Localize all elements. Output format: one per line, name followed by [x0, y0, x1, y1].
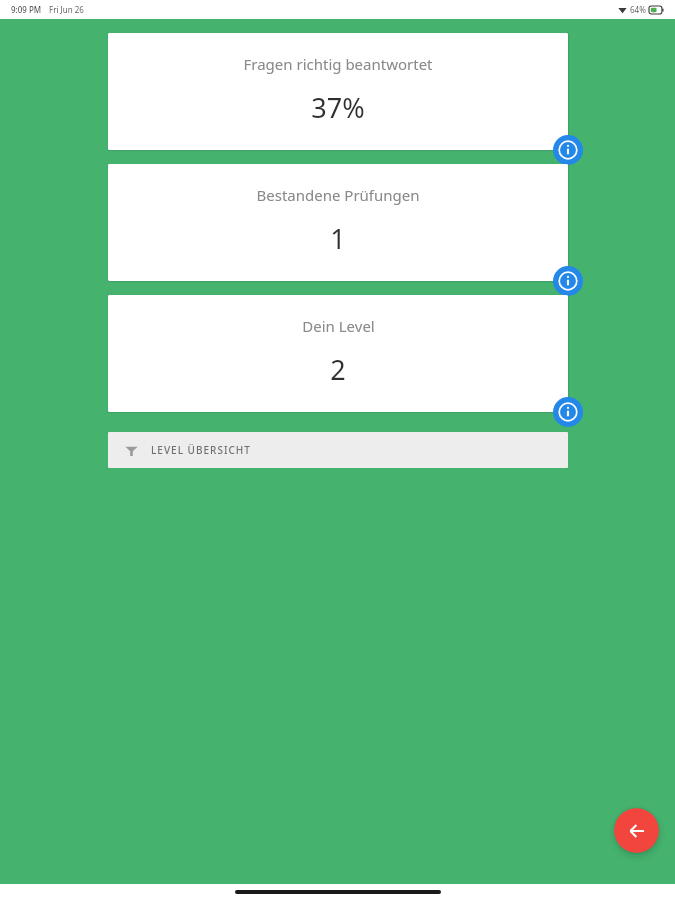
button[interactable]: Fragen richtig beantwortet	[108, 33, 568, 150]
staticText: 1	[330, 220, 346, 257]
button[interactable]: Dein Level	[108, 295, 568, 412]
staticText: 2	[330, 351, 346, 388]
button[interactable]: Back	[614, 808, 659, 853]
staticText: Fragen richtig beantwortet	[243, 54, 433, 74]
staticText: 37%	[311, 89, 365, 126]
staticText: Bestandene Prüfungen	[256, 185, 420, 205]
staticText: 9:09 PM	[11, 4, 42, 15]
button[interactable]: LEVEL ÜBERSICHT	[108, 432, 568, 468]
button[interactable]: Bestandene Prüfungen	[108, 164, 568, 281]
staticText: Dein Level	[302, 316, 375, 336]
staticText: LEVEL ÜBERSICHT	[151, 443, 251, 457]
staticText: 64%	[630, 4, 646, 15]
button[interactable]: Info	[553, 135, 583, 165]
button[interactable]: Info	[553, 266, 583, 296]
button[interactable]: Info	[553, 397, 583, 427]
staticText: Fri Jun 26	[49, 4, 84, 15]
